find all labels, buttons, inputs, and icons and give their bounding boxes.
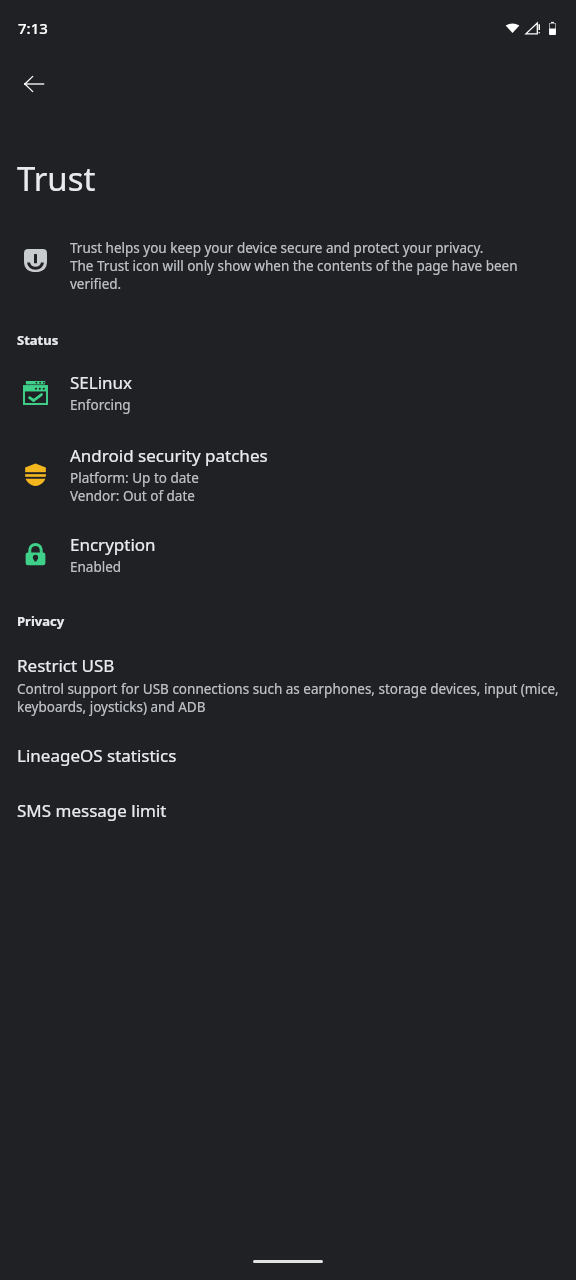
button[interactable]: Back bbox=[6, 56, 62, 112]
button[interactable]: LineageOS statistics bbox=[0, 742, 576, 769]
button[interactable]: Android security patches bbox=[0, 440, 576, 509]
button[interactable]: SMS message limit bbox=[0, 797, 576, 824]
staticText: Trust helps you keep your device secure … bbox=[70, 239, 484, 257]
staticText: Enabled bbox=[70, 558, 122, 576]
staticText: SMS message limit bbox=[17, 799, 167, 822]
staticText: Encryption bbox=[70, 533, 156, 556]
staticText: Platform: Up to date Vendor: Out of date bbox=[70, 469, 199, 505]
staticText: Enforcing bbox=[70, 396, 131, 414]
staticText: Control support for USB connections such… bbox=[17, 680, 562, 716]
button[interactable]: Restrict USB bbox=[0, 652, 576, 718]
staticText: Status bbox=[17, 331, 59, 349]
staticText: Privacy bbox=[17, 612, 65, 630]
button[interactable]: SELinux bbox=[0, 367, 576, 418]
button[interactable]: Encryption bbox=[0, 529, 576, 580]
staticText: LineageOS statistics bbox=[17, 744, 177, 767]
staticText: Restrict USB bbox=[17, 654, 115, 677]
staticText: Trust bbox=[17, 156, 96, 201]
staticText: 7:13 bbox=[18, 18, 48, 38]
staticText: Android security patches bbox=[70, 444, 268, 467]
staticText: SELinux bbox=[70, 371, 133, 394]
staticText: The Trust icon will only show when the c… bbox=[70, 257, 562, 293]
